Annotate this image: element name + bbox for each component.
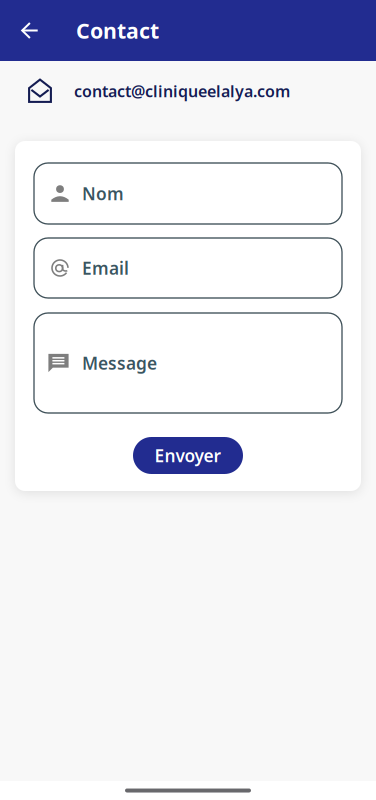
staticText: Email bbox=[82, 256, 129, 279]
button[interactable]: Message bbox=[34, 313, 342, 413]
staticText: Contact bbox=[76, 16, 159, 45]
staticText: Envoyer bbox=[154, 444, 221, 467]
staticText: Message bbox=[82, 351, 157, 374]
button[interactable]: Envoyer bbox=[133, 437, 243, 474]
button[interactable]: Email bbox=[34, 238, 342, 298]
button[interactable]: Back bbox=[0, 0, 50, 61]
staticText: contact@cliniqueelalya.com bbox=[74, 80, 290, 102]
button[interactable]: Nom bbox=[34, 163, 342, 224]
staticText: Nom bbox=[82, 182, 124, 205]
